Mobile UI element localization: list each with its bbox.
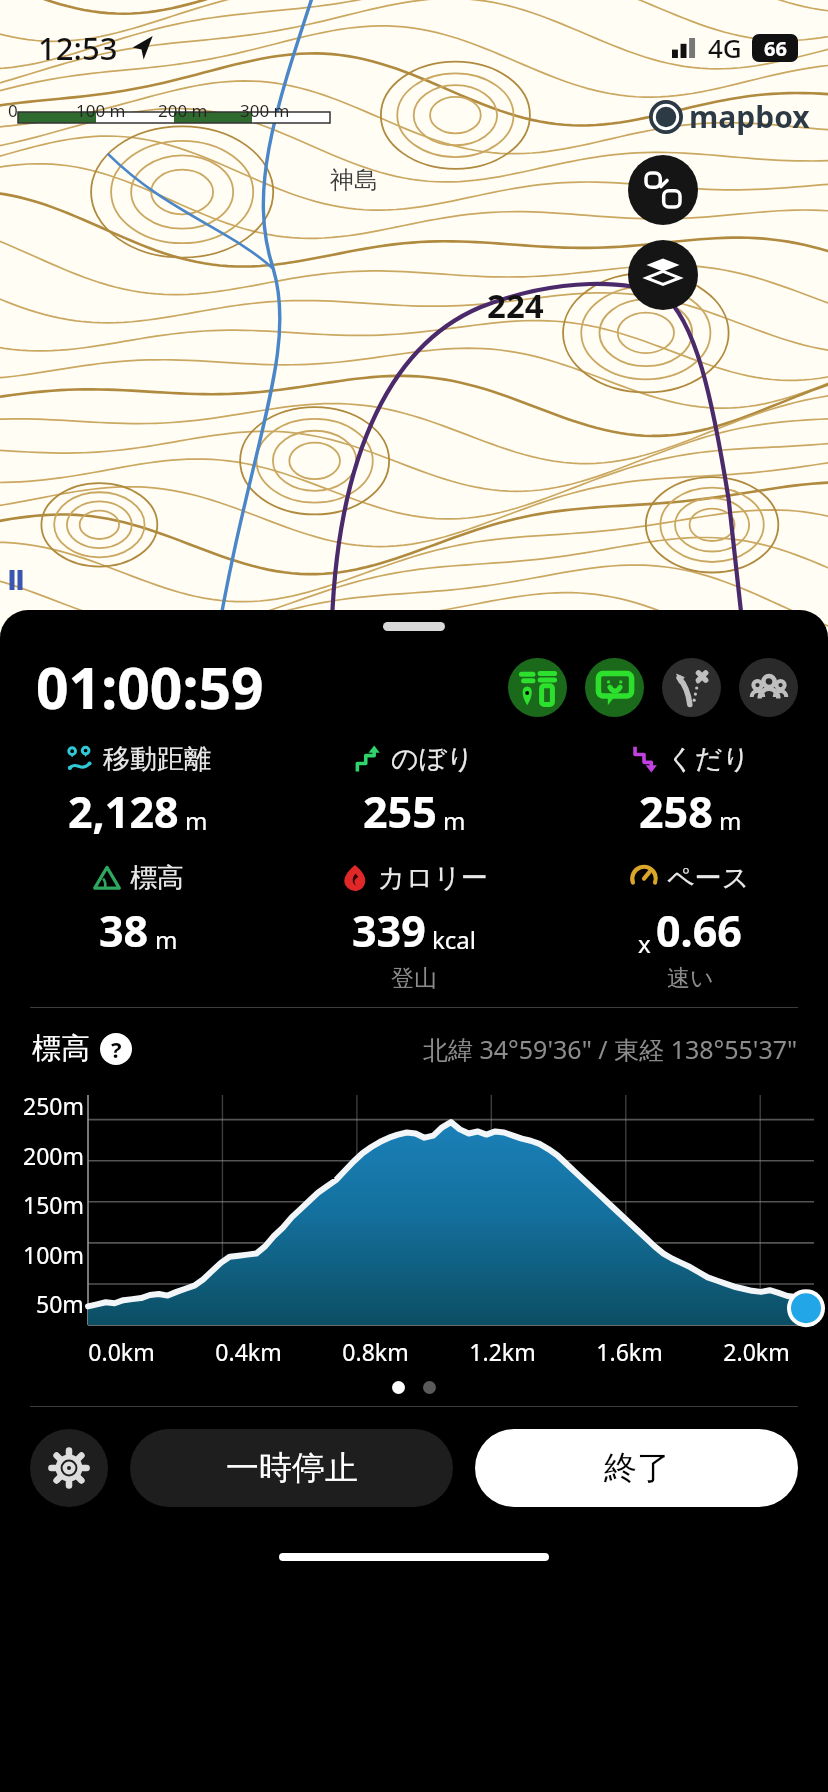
staticText: 4G: [708, 30, 742, 65]
staticText: m: [155, 923, 178, 956]
staticText: 標高: [130, 861, 184, 895]
button[interactable]: 一時停止: [130, 1429, 453, 1507]
staticText: kcal: [432, 923, 476, 956]
button[interactable]: ペース: [552, 861, 828, 993]
staticText: 0.4km: [185, 1336, 312, 1367]
staticText: 登山: [391, 964, 437, 993]
staticText: 0.0km: [58, 1336, 185, 1367]
staticText: 255: [363, 782, 437, 841]
staticText: 0: [8, 99, 18, 122]
staticText: 神島: [330, 165, 378, 195]
staticText: 速い: [667, 964, 714, 993]
staticText: ?: [111, 1034, 122, 1064]
staticText: m: [185, 804, 208, 837]
staticText: カロリー: [378, 861, 488, 895]
staticText: 200 m: [158, 99, 208, 122]
button[interactable]: くだり: [552, 742, 828, 841]
staticText: 0.66: [656, 901, 742, 960]
staticText: くだり: [667, 742, 750, 776]
staticText: 一時停止: [226, 1447, 358, 1489]
button[interactable]: Route deviation: [662, 658, 721, 717]
button[interactable]: 標高: [0, 861, 276, 960]
staticText: 250m: [23, 1090, 84, 1121]
staticText: x: [638, 927, 651, 960]
staticText: 2.0km: [693, 1336, 820, 1367]
staticText: 標高: [32, 1030, 90, 1067]
staticText: 100m: [23, 1239, 84, 1270]
button[interactable]: のぼり: [276, 742, 552, 841]
staticText: ペース: [667, 861, 750, 895]
staticText: 150m: [23, 1189, 84, 1220]
staticText: 01:00:59: [36, 648, 264, 726]
staticText: のぼり: [391, 742, 474, 776]
button[interactable]: Fullscreen map: [628, 155, 698, 225]
button[interactable]: Map layers: [628, 240, 698, 310]
button[interactable]: [423, 1381, 436, 1394]
staticText: 12:53: [38, 27, 118, 69]
staticText: 100 m: [76, 99, 126, 122]
staticText: 2,128: [68, 782, 179, 841]
staticText: m: [719, 804, 742, 837]
button[interactable]: Messages: [585, 658, 644, 717]
staticText: 終了: [604, 1447, 670, 1489]
staticText: 258: [639, 782, 713, 841]
button[interactable]: Elevation help: [100, 1033, 132, 1065]
staticText: 1.2km: [439, 1336, 566, 1367]
button[interactable]: Trail info: [508, 658, 567, 717]
staticText: 50m: [36, 1288, 84, 1319]
button[interactable]: カロリー: [276, 861, 552, 993]
staticText: 300 m: [240, 99, 290, 122]
staticText: 北緯 34°59'36" / 東経 138°55'37": [423, 1032, 798, 1066]
staticText: 66: [764, 35, 787, 62]
staticText: m: [443, 804, 466, 837]
button[interactable]: 移動距離: [0, 742, 276, 841]
staticText: 200m: [23, 1140, 84, 1171]
button[interactable]: Settings: [30, 1429, 108, 1507]
staticText: 1.6km: [566, 1336, 693, 1367]
staticText: 0.8km: [312, 1336, 439, 1367]
button[interactable]: Group members: [739, 658, 798, 717]
staticText: 339: [352, 901, 426, 960]
staticText: mapbox: [689, 96, 810, 137]
button[interactable]: 終了: [475, 1429, 798, 1507]
staticText: 移動距離: [103, 742, 211, 776]
button[interactable]: [392, 1381, 405, 1394]
staticText: 224: [487, 283, 544, 328]
staticText: 38: [99, 901, 149, 960]
